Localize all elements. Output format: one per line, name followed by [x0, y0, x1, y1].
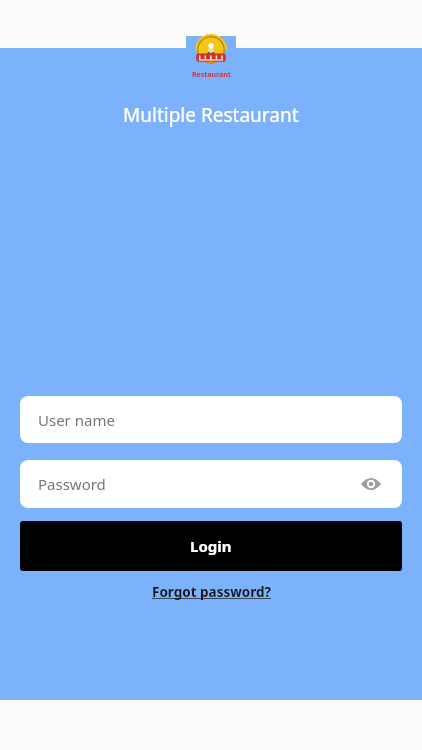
staticText: User name	[38, 410, 115, 430]
staticText: Multiple Restaurant	[123, 102, 299, 128]
staticText: Restaurant	[192, 70, 231, 80]
button[interactable]: Show password	[354, 467, 388, 501]
button[interactable]: User name	[20, 396, 402, 443]
button[interactable]: Login	[20, 521, 402, 571]
button[interactable]: Forgot password?	[146, 580, 277, 604]
staticText: Forgot password?	[152, 583, 271, 601]
button[interactable]: Password	[20, 460, 402, 508]
staticText: Login	[190, 536, 232, 556]
staticText: Password	[38, 474, 354, 494]
